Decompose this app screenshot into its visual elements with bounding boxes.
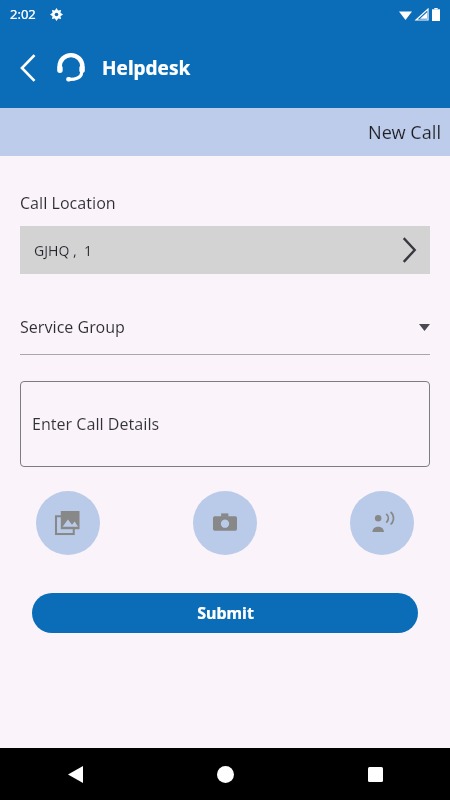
button[interactable]: New Call [0,108,450,156]
button[interactable]: Choose image from gallery [36,491,100,555]
button[interactable]: Service Group [20,312,430,355]
button[interactable]: Enter Call Details [20,381,430,467]
button[interactable]: GJHQ , 1 [20,226,430,274]
staticText: Helpdesk [102,55,191,81]
button[interactable]: Recent apps [300,748,450,800]
staticText: 2:02 [10,5,36,23]
button[interactable]: Take photo [193,491,257,555]
staticText: GJHQ , 1 [34,241,93,260]
button[interactable]: Home [150,748,300,800]
staticText: Call Location [20,192,116,214]
button[interactable]: Submit [32,593,418,633]
staticText: Service Group [20,316,125,338]
button[interactable]: Back [8,48,48,88]
staticText: New Call [368,120,442,145]
staticText: Enter Call Details [32,413,160,435]
staticText: Submit [197,602,254,624]
button[interactable]: Back [0,748,150,800]
button[interactable]: Record voice note [350,491,414,555]
